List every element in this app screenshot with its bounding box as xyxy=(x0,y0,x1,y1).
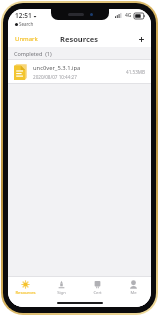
staticText: Sign xyxy=(57,290,66,296)
staticText: Resources xyxy=(60,34,99,44)
button[interactable]: Resources xyxy=(8,277,43,299)
button[interactable]: Unmark xyxy=(8,33,42,45)
staticText: 2020/08/07 10:44:27 xyxy=(33,74,77,80)
button[interactable]: unc0ver_5.3.1.ipa xyxy=(8,60,151,84)
staticText: Completed (1) xyxy=(14,50,52,57)
staticText: 41.53MB xyxy=(126,69,145,75)
staticText: Unmark xyxy=(15,35,38,43)
staticText: Cert xyxy=(93,290,102,296)
button[interactable]: Me xyxy=(115,277,151,299)
staticText: Resources xyxy=(15,290,36,296)
staticText: unc0ver_5.3.1.ipa xyxy=(33,64,81,72)
staticText: Search xyxy=(19,21,34,27)
staticText: 4G xyxy=(125,12,132,19)
staticText: 12:51 xyxy=(15,11,32,20)
button[interactable]: Add xyxy=(136,34,146,44)
button[interactable]: Sign xyxy=(43,277,79,299)
button[interactable]: Cert xyxy=(79,277,115,299)
staticText: Me xyxy=(130,290,137,296)
